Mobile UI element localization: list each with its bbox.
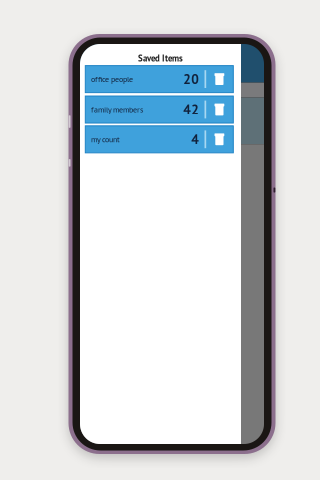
staticText: 20 [183,70,199,88]
button[interactable]: family members [85,96,233,123]
button[interactable]: my count [85,126,233,153]
staticText: 42 [183,101,199,118]
staticText: office people [91,74,133,84]
staticText: Saved Items [138,52,183,64]
staticText: family members [91,104,143,115]
staticText: 4 [191,131,199,148]
button[interactable]: office people [85,66,233,93]
staticText: my count [91,134,120,144]
